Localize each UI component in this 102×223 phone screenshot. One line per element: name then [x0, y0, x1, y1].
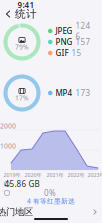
staticText: 2021年 [46, 171, 63, 179]
staticText: 统计 [15, 7, 37, 20]
staticText: 4 有等红墨新选 [27, 197, 75, 205]
staticText: GIF [55, 48, 68, 58]
staticText: 17% [15, 94, 29, 102]
staticText: PNG [55, 37, 72, 47]
staticText: 2019年 [3, 171, 20, 179]
staticText: 1000 [0, 142, 16, 150]
staticText: 2022年 [67, 171, 84, 179]
staticText: 45.86 GB [4, 179, 39, 189]
staticText: 15 [71, 48, 81, 58]
staticText: 2023年 [87, 171, 102, 179]
button[interactable]: Back [2, 8, 14, 20]
staticText: MP4 [55, 88, 72, 98]
staticText: 2000 [0, 122, 16, 130]
staticText: 173 [75, 88, 90, 98]
staticText: 2020年 [24, 171, 41, 179]
button[interactable]: 4 有等红墨新选 [27, 197, 75, 205]
staticText: JPEG [55, 26, 72, 36]
staticText: 1246 [75, 20, 90, 42]
staticText: 9:41 [17, 0, 34, 10]
staticText: 热门地区 [0, 206, 33, 218]
staticText: 79% [15, 43, 29, 51]
staticText: 0% [44, 188, 56, 198]
staticText: 157 [75, 37, 90, 47]
